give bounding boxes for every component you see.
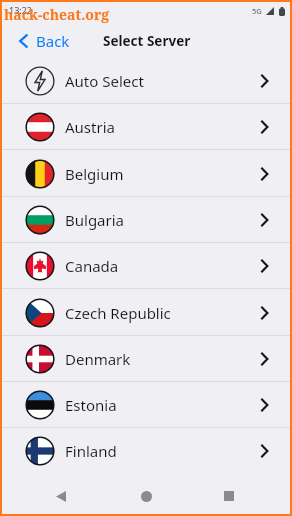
- button[interactable]: Finland: [2, 428, 290, 474]
- staticText: Select Server: [103, 32, 191, 50]
- staticText: Estonia: [65, 395, 117, 415]
- staticText: Back: [36, 31, 70, 51]
- button[interactable]: Czech Republic: [2, 290, 290, 336]
- button[interactable]: Belgium: [2, 151, 290, 197]
- staticText: Czech Republic: [65, 303, 171, 323]
- staticText: 5G: [252, 6, 262, 16]
- button[interactable]: Canada: [2, 243, 290, 289]
- staticText: 13:22: [9, 4, 33, 16]
- staticText: Canada: [65, 256, 119, 276]
- staticText: Denmark: [65, 349, 131, 369]
- staticText: Bulgaria: [65, 210, 125, 230]
- staticText: Belgium: [65, 164, 124, 184]
- button[interactable]: Austria: [2, 104, 290, 150]
- button[interactable]: Home: [131, 481, 161, 511]
- button[interactable]: Back: [46, 481, 76, 511]
- staticText: Austria: [65, 117, 115, 137]
- staticText: Auto Select: [65, 71, 144, 91]
- button[interactable]: Denmark: [2, 336, 290, 382]
- button[interactable]: Bulgaria: [2, 197, 290, 243]
- button[interactable]: Back: [2, 23, 82, 59]
- staticText: hack-cheat.org: [4, 5, 110, 24]
- staticText: Finland: [65, 441, 117, 461]
- button[interactable]: Recent apps: [214, 481, 244, 511]
- button[interactable]: Auto Select: [2, 58, 290, 104]
- button[interactable]: Estonia: [2, 382, 290, 428]
